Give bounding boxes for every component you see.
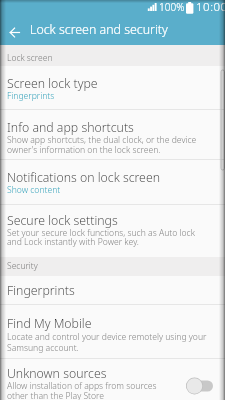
staticText: Screen lock type (7, 75, 98, 92)
button[interactable]: Notifications on lock screen (0, 160, 225, 205)
staticText: other than the Play Store (7, 390, 105, 400)
staticText: Fingerprints (7, 90, 55, 102)
button[interactable]: Unknown sources (0, 359, 225, 400)
staticText: Find My Mobile (7, 315, 92, 332)
staticText: Show app shortcuts, the dual clock, or t… (7, 134, 197, 146)
staticText: Allow installation of apps from sources (7, 380, 157, 392)
staticText: 10:00 (196, 0, 225, 15)
staticText: Lock screen (7, 52, 53, 64)
button[interactable]: Find My Mobile (0, 305, 225, 358)
staticText: Show content (7, 184, 61, 196)
button[interactable]: Lock screen and security (0, 18, 225, 45)
button[interactable]: Screen lock type (0, 66, 225, 111)
staticText: Info and app shortcuts (7, 119, 134, 136)
staticText: Set your secure lock functions, such as … (7, 227, 195, 239)
staticText: Secure lock settings (7, 212, 118, 229)
staticText: Notifications on lock screen (7, 169, 161, 186)
staticText: 100% (159, 0, 185, 14)
staticText: owner's information on the lock screen. (7, 144, 161, 156)
staticText: Security (7, 260, 38, 272)
button[interactable]: Info and app shortcuts (0, 111, 225, 159)
staticText: Unknown sources (7, 365, 107, 382)
staticText: and Lock instantly with Power key. (7, 236, 139, 248)
staticText: Lock screen and security (30, 21, 168, 38)
staticText: Locate and control your device remotely … (7, 331, 207, 343)
button[interactable]: Fingerprints (0, 276, 225, 305)
staticText: Fingerprints (7, 282, 75, 299)
staticText: Samsung account. (7, 342, 79, 354)
button[interactable]: Secure lock settings (0, 205, 225, 257)
